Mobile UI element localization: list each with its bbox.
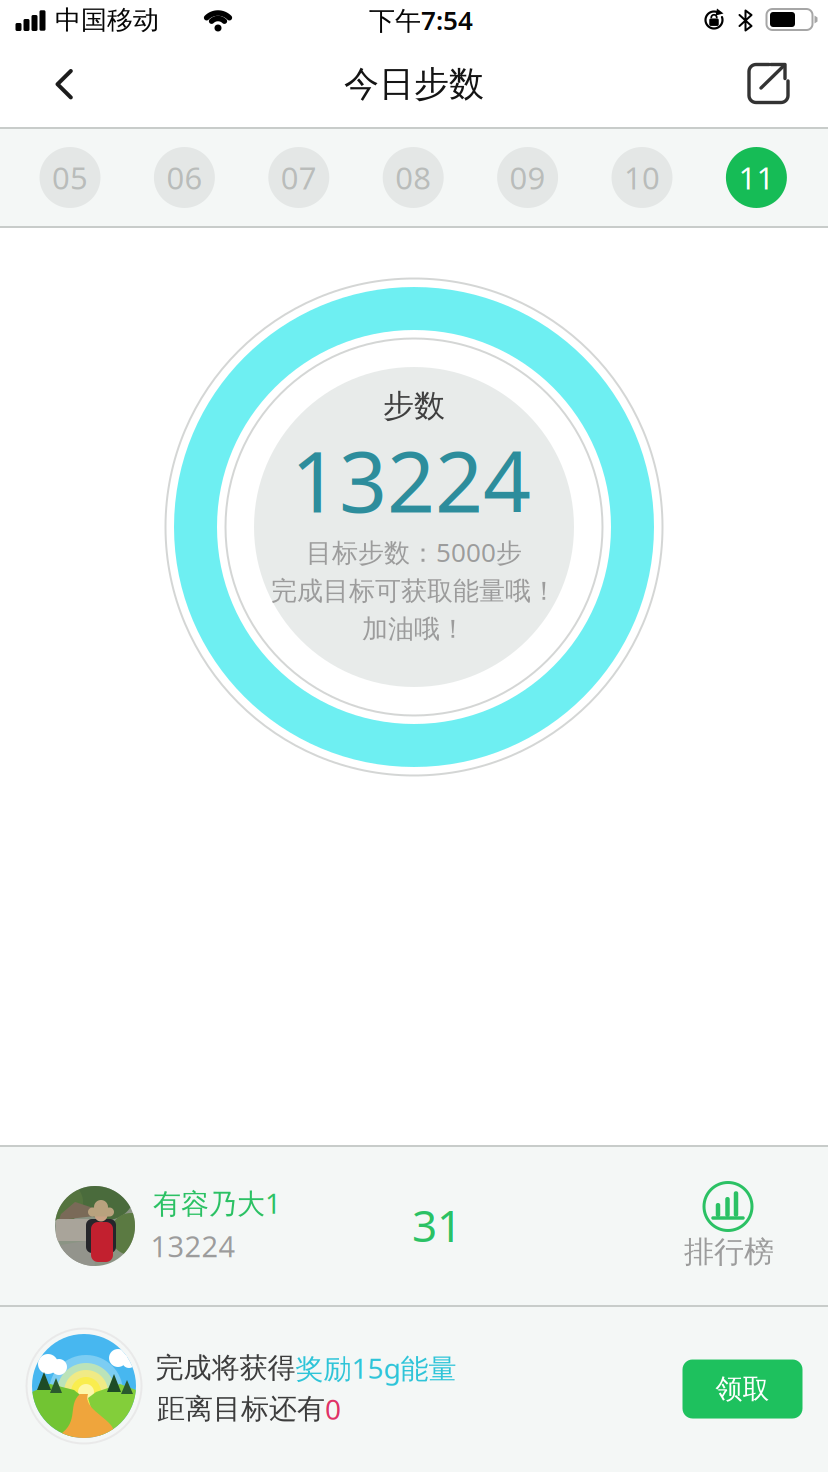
staticText: 步数 [383,386,445,426]
staticText: 05 [52,156,88,199]
staticText: 下午7:54 [369,2,473,38]
button[interactable]: 11 [726,147,787,208]
button[interactable]: Share [738,54,798,114]
staticText: 中国移动 [55,4,159,36]
staticText: 0 [325,1390,341,1428]
button[interactable]: 09 [497,147,558,208]
button[interactable]: 领取 [682,1359,802,1418]
button[interactable]: 05 [39,147,100,208]
staticText: 31 [412,1195,462,1255]
staticText: 08 [395,156,431,199]
button[interactable]: 10 [611,147,672,208]
staticText: 今日步数 [344,62,484,106]
staticText: 06 [166,156,202,199]
button[interactable]: 08 [383,147,444,208]
staticText: 07 [281,156,317,199]
staticText: 完成将获得 [155,1350,295,1386]
staticText: 领取 [715,1372,769,1406]
staticText: 完成目标可获取能量哦！ [271,575,557,607]
staticText: 有容乃大1 [153,1184,281,1222]
staticText: 排行榜 [684,1233,774,1271]
button[interactable]: 07 [268,147,329,208]
staticText: 加油哦！ [362,613,466,645]
staticText: 13224 [291,423,531,537]
staticText: 目标步数：5000步 [306,534,522,570]
button[interactable]: Back [34,54,94,114]
staticText: 奖励15g能量 [295,1349,456,1387]
staticText: 距离目标还有 [157,1391,325,1427]
staticText: 09 [510,156,546,199]
staticText: 10 [624,156,660,199]
button[interactable]: 排行榜 [678,1156,778,1266]
staticText: 13224 [150,1226,235,1266]
button[interactable]: 06 [154,147,215,208]
staticText: 11 [738,156,774,199]
